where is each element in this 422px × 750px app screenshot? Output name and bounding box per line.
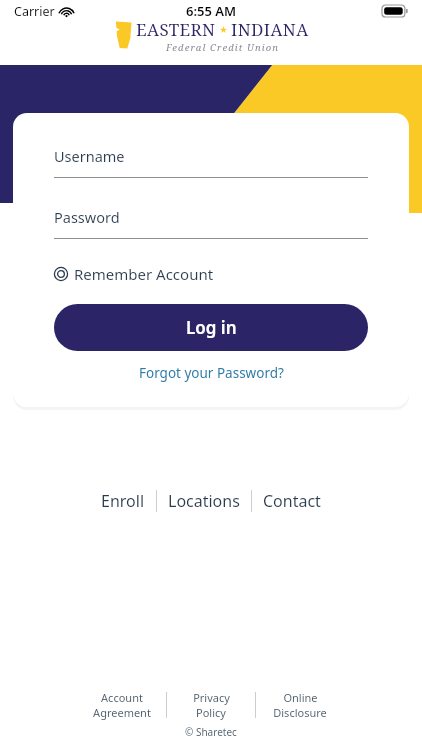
button[interactable]: Locations — [157, 486, 251, 516]
staticText: Password — [54, 207, 120, 227]
staticText: Account — [101, 690, 143, 705]
staticText: © Sharetec — [185, 725, 237, 739]
button[interactable]: Remember Account — [54, 264, 214, 284]
button[interactable]: Password — [54, 207, 368, 239]
button[interactable]: Forgot your Password? — [54, 364, 368, 382]
staticText: Forgot your Password? — [139, 364, 284, 382]
button[interactable]: Contact — [252, 486, 332, 516]
staticText: Locations — [168, 490, 240, 512]
staticText: Log in — [186, 316, 237, 339]
staticText: Username — [54, 146, 125, 166]
staticText: Federal Credit Union — [166, 41, 280, 52]
button[interactable]: Account — [78, 690, 166, 720]
staticText: Agreement — [93, 705, 151, 720]
staticText: Remember Account — [74, 264, 214, 284]
staticText: Online — [283, 690, 318, 705]
staticText: INDIANA — [231, 18, 309, 41]
staticText: Carrier — [14, 3, 55, 20]
button[interactable]: Log in — [54, 304, 368, 351]
staticText: Privacy — [193, 690, 230, 705]
staticText: 6:55 AM — [186, 2, 237, 20]
staticText: Contact — [263, 490, 321, 512]
button[interactable]: Privacy — [167, 690, 255, 720]
button[interactable]: Online — [256, 690, 344, 720]
staticText: EASTERN — [136, 18, 216, 41]
staticText: Policy — [196, 705, 226, 720]
button[interactable]: Enroll — [90, 486, 156, 516]
staticText: Enroll — [101, 490, 145, 512]
button[interactable]: Username — [54, 146, 368, 178]
staticText: Disclosure — [273, 705, 327, 720]
